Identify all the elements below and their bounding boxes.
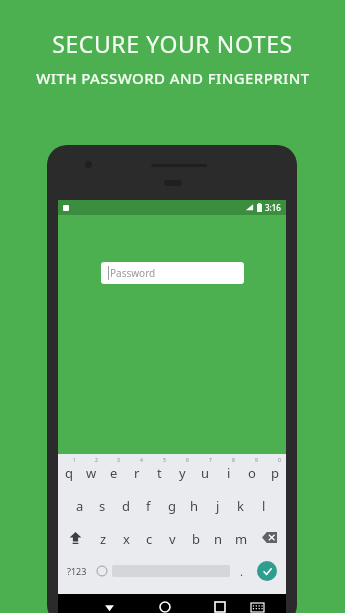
button[interactable]: x (115, 524, 138, 550)
button[interactable]: d (114, 491, 137, 517)
staticText: 6 (186, 457, 189, 464)
staticText: b (192, 530, 200, 548)
button[interactable]: Backspace (253, 524, 286, 550)
button[interactable]: Back (95, 594, 124, 613)
staticText: y (179, 464, 186, 482)
button[interactable]: a (69, 491, 91, 517)
staticText: . (240, 564, 243, 579)
staticText: k (237, 497, 244, 515)
staticText: x (123, 530, 130, 548)
button[interactable]: Emoji (92, 558, 112, 584)
button[interactable]: 5 (148, 458, 171, 484)
staticText: 5 (163, 457, 166, 464)
staticText: 3 (117, 457, 120, 464)
staticText: 0 (278, 457, 281, 464)
button[interactable]: 9 (240, 458, 263, 484)
staticText: 4 (140, 457, 143, 464)
staticText: 7 (209, 457, 212, 464)
button[interactable]: 7 (194, 458, 217, 484)
staticText: f (146, 497, 151, 515)
button[interactable]: 2 (80, 458, 102, 484)
staticText: n (214, 530, 223, 548)
staticText: WITH PASSWORD AND FINGERPRINT (36, 68, 310, 88)
staticText: m (235, 530, 248, 548)
staticText: o (248, 464, 256, 482)
button[interactable]: Home (150, 594, 179, 613)
staticText: 2 (95, 457, 98, 464)
staticText: Password (110, 266, 156, 280)
staticText: 9 (255, 457, 258, 464)
staticText: p (271, 464, 279, 482)
button[interactable]: s (91, 491, 114, 517)
button[interactable]: v (161, 524, 184, 550)
button[interactable]: c (138, 524, 161, 550)
staticText: h (190, 497, 199, 515)
button[interactable]: 1 (58, 458, 80, 484)
button[interactable]: 6 (171, 458, 194, 484)
button[interactable]: Shift (58, 524, 92, 550)
staticText: a (76, 497, 84, 515)
staticText: 8 (232, 457, 235, 464)
button[interactable]: 3 (102, 458, 125, 484)
button[interactable]: Recents (205, 594, 234, 613)
button[interactable]: b (184, 524, 207, 550)
staticText: v (169, 530, 176, 548)
button[interactable]: Password (101, 262, 244, 284)
button[interactable]: g (160, 491, 183, 517)
staticText: t (157, 464, 162, 482)
staticText: c (146, 530, 153, 548)
button[interactable]: 0 (263, 458, 286, 484)
staticText: g (168, 497, 176, 515)
button[interactable]: Keyboard (243, 594, 272, 613)
button[interactable]: 4 (125, 458, 148, 484)
button[interactable]: m (230, 524, 253, 550)
button[interactable]: h (183, 491, 206, 517)
staticText: z (100, 530, 107, 548)
button[interactable]: Enter (257, 561, 277, 581)
staticText: e (110, 464, 118, 482)
staticText: r (134, 464, 140, 482)
button[interactable]: n (207, 524, 230, 550)
staticText: j (216, 497, 220, 515)
button[interactable]: l (252, 491, 275, 517)
staticText: 1 (73, 457, 76, 464)
staticText: SECURE YOUR NOTES (52, 28, 293, 59)
staticText: 3:16 (265, 202, 281, 213)
button[interactable]: z (92, 524, 115, 550)
staticText: w (86, 464, 97, 482)
button[interactable]: . (230, 558, 252, 584)
button[interactable]: ?123 (62, 558, 92, 584)
button[interactable]: j (206, 491, 229, 517)
staticText: l (262, 497, 266, 515)
button[interactable]: f (137, 491, 160, 517)
staticText: q (65, 464, 73, 482)
staticText: ?123 (67, 565, 87, 577)
button[interactable]: k (229, 491, 252, 517)
staticText: d (122, 497, 130, 515)
staticText: i (227, 464, 231, 482)
button[interactable]: 8 (217, 458, 240, 484)
staticText: u (201, 464, 210, 482)
staticText: s (99, 497, 106, 515)
